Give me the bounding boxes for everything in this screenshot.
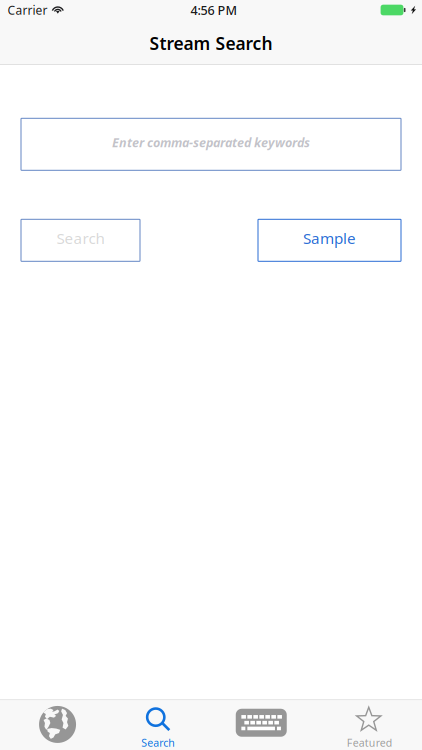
button[interactable]: Search — [105, 700, 211, 750]
button[interactable]: Sample — [258, 219, 401, 261]
staticText: Search — [56, 228, 104, 248]
staticText: Search — [141, 735, 175, 750]
staticText: Featured — [347, 735, 393, 750]
button[interactable]: Featured — [316, 700, 422, 750]
button[interactable]: Search — [21, 219, 140, 261]
staticText: Sample — [303, 228, 356, 248]
staticText: Stream Search — [149, 31, 272, 55]
staticText: 4:56 PM — [190, 1, 237, 19]
staticText: Carrier — [7, 2, 47, 18]
staticText: Enter comma-separated keywords — [112, 134, 310, 151]
button[interactable]: Keyboard — [211, 700, 316, 750]
button[interactable]: Browse — [0, 700, 105, 750]
